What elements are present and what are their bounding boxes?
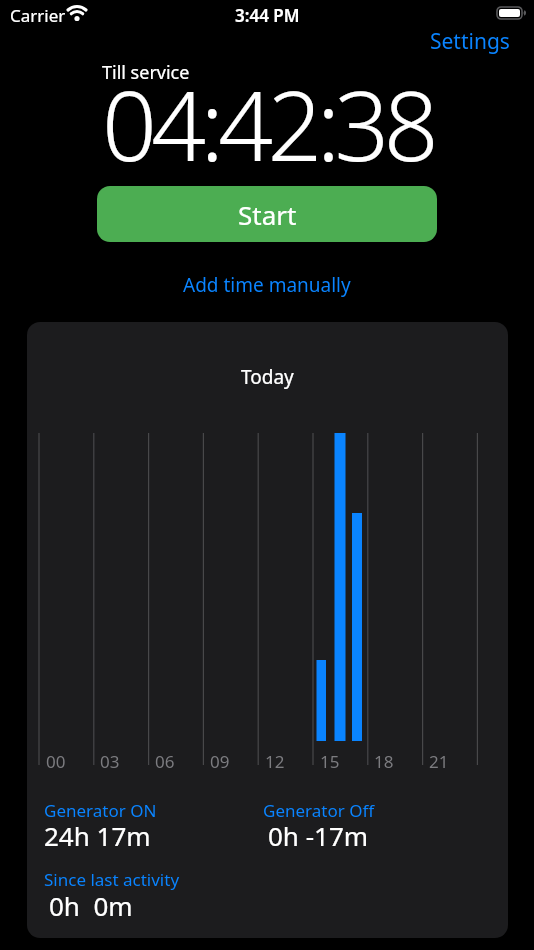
staticText: 03 bbox=[100, 750, 120, 773]
button[interactable]: Add time manually bbox=[183, 272, 351, 298]
staticText: 3:44 PM bbox=[235, 4, 300, 27]
staticText: 0h 0m bbox=[49, 888, 133, 923]
staticText: 12 bbox=[265, 750, 285, 773]
staticText: Today bbox=[241, 364, 294, 390]
staticText: Till service bbox=[102, 60, 190, 85]
staticText: Generator ON bbox=[44, 799, 157, 822]
staticText: 00 bbox=[46, 750, 66, 773]
staticText: Add time manually bbox=[183, 272, 351, 298]
staticText: 04:42:38 bbox=[102, 58, 433, 189]
button[interactable]: Settings bbox=[430, 27, 510, 56]
staticText: Generator Off bbox=[263, 799, 375, 822]
staticText: 06 bbox=[155, 750, 175, 773]
staticText: Since last activity bbox=[44, 868, 180, 891]
staticText: 21 bbox=[429, 750, 449, 773]
staticText: Settings bbox=[430, 27, 510, 56]
staticText: 24h 17m bbox=[44, 818, 151, 853]
staticText: 18 bbox=[374, 750, 394, 773]
staticText: Start bbox=[238, 197, 297, 232]
staticText: Carrier bbox=[10, 4, 66, 27]
button[interactable]: Start bbox=[97, 186, 437, 242]
staticText: 09 bbox=[210, 750, 230, 773]
staticText: 0h -17m bbox=[268, 818, 369, 853]
staticText: 15 bbox=[320, 750, 340, 773]
